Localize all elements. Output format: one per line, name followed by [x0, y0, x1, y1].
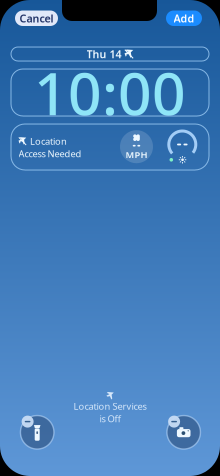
staticText: Add [173, 11, 194, 25]
staticText: Thu 14 [86, 47, 121, 61]
staticText: Access Needed [18, 147, 81, 160]
button[interactable]: Location [11, 124, 209, 170]
button[interactable]: 10:00 [11, 69, 209, 116]
staticText: Cancel [19, 11, 53, 25]
staticText: is Off [99, 412, 120, 425]
button[interactable]: Remove camera shortcut [162, 410, 206, 454]
button[interactable]: Remove flashlight shortcut [15, 410, 59, 454]
button[interactable]: Cancel [15, 10, 58, 26]
staticText: Location Services [73, 400, 146, 412]
button[interactable]: Thu 14 [11, 47, 209, 61]
button[interactable]: Add [166, 10, 202, 26]
staticText: MPH [125, 148, 147, 161]
staticText: Location [30, 135, 67, 147]
staticText: 10:00 [34, 53, 186, 131]
